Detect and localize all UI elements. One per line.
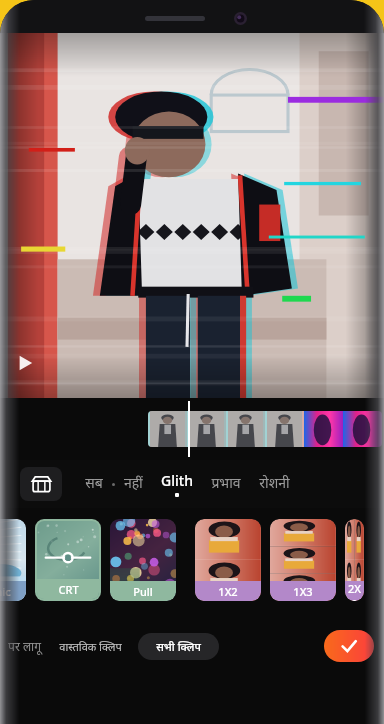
- staticText: रोशनी: [259, 473, 290, 492]
- button[interactable]: प्रभाव: [202, 467, 250, 501]
- staticText: CRT: [58, 582, 79, 597]
- staticText: 1X3: [293, 584, 313, 599]
- button[interactable]: 2X2: [345, 519, 364, 601]
- button[interactable]: रोशनी: [250, 467, 299, 501]
- button[interactable]: nic: [0, 519, 26, 601]
- button[interactable]: Pull: [110, 519, 176, 601]
- button[interactable]: 1X3: [270, 519, 336, 601]
- button[interactable]: Play: [10, 348, 40, 378]
- button[interactable]: 1X2: [195, 519, 261, 601]
- staticText: सब: [85, 473, 103, 492]
- staticText: 2X2: [345, 581, 364, 601]
- staticText: सभी क्लिप: [156, 639, 201, 654]
- button[interactable]: Confirm: [324, 630, 374, 662]
- button[interactable]: सभी क्लिप: [138, 633, 219, 660]
- button[interactable]: नहीं: [115, 467, 152, 501]
- staticText: नहीं: [124, 473, 143, 492]
- staticText: प्रभाव: [211, 473, 241, 492]
- staticText: 1X2: [218, 584, 238, 599]
- staticText: पर लागू: [8, 638, 41, 654]
- staticText: Pull: [133, 584, 153, 599]
- button[interactable]: Store: [20, 467, 62, 501]
- button[interactable]: सब: [76, 467, 112, 501]
- staticText: nic: [0, 584, 11, 599]
- button[interactable]: CRT: [37, 521, 99, 599]
- staticText: वास्तविक क्लिप: [59, 639, 122, 654]
- button[interactable]: वास्तविक क्लिप: [55, 633, 126, 660]
- button[interactable]: Glith: [152, 465, 202, 503]
- staticText: Glith: [161, 471, 193, 490]
- button[interactable]: [148, 411, 382, 447]
